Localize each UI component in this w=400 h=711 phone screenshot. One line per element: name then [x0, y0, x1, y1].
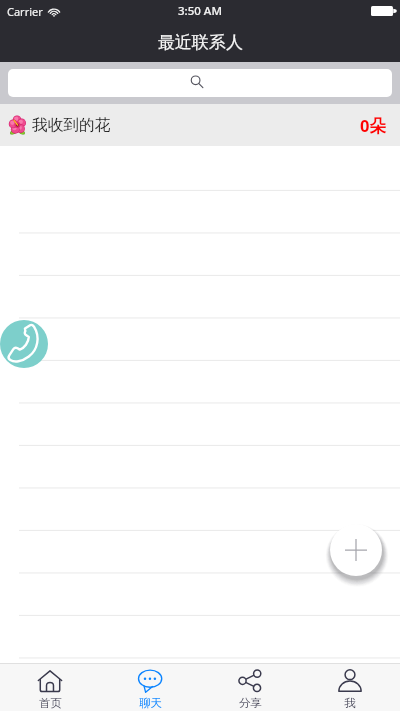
button[interactable]: 我 [300, 664, 400, 711]
staticText: 我 [344, 696, 356, 710]
staticText: 3:50 AM [178, 3, 222, 19]
staticText: 聊天 [139, 696, 162, 710]
button[interactable]: 我收到的花 [0, 104, 400, 146]
button[interactable]: Contact avatar [0, 320, 48, 368]
staticText: 首页 [39, 696, 62, 710]
staticText: Carrier [7, 4, 43, 19]
staticText: 分享 [239, 696, 262, 710]
button[interactable]: Search [8, 69, 392, 97]
staticText: 我收到的花 [32, 115, 111, 135]
staticText: 最近联系人 [158, 32, 243, 53]
button[interactable]: 分享 [200, 664, 300, 711]
button[interactable]: Add contact [330, 524, 382, 576]
staticText: 0朵 [360, 114, 386, 137]
button[interactable]: 首页 [0, 664, 100, 711]
button[interactable]: 聊天 [100, 664, 200, 711]
